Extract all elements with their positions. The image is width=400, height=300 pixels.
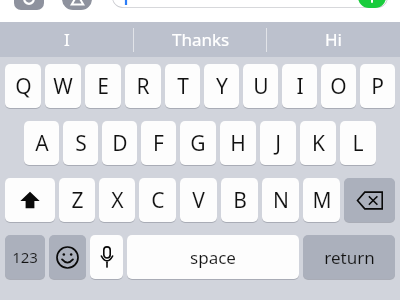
button[interactable]: Emoji xyxy=(49,235,86,280)
button[interactable]: M xyxy=(303,178,340,223)
button[interactable]: V xyxy=(180,178,217,223)
staticText: N xyxy=(273,186,289,215)
staticText: S xyxy=(75,129,87,158)
button[interactable]: C xyxy=(139,178,176,223)
button[interactable]: K xyxy=(300,121,336,166)
button[interactable]: Dictation xyxy=(90,235,123,280)
button[interactable]: R xyxy=(125,64,161,109)
button[interactable]: Send xyxy=(358,0,386,8)
button[interactable]: Shift xyxy=(5,178,55,223)
button[interactable]: I xyxy=(282,64,317,109)
button[interactable]: Camera xyxy=(14,0,44,10)
staticText: L xyxy=(352,129,364,158)
staticText: M xyxy=(312,186,332,215)
staticText: G xyxy=(190,129,206,158)
staticText: Q xyxy=(15,72,32,101)
staticText: A xyxy=(35,129,49,158)
staticText: space xyxy=(190,246,236,269)
button[interactable]: Z xyxy=(59,178,95,223)
staticText: I xyxy=(296,72,304,101)
staticText: X xyxy=(111,186,124,215)
button[interactable]: T xyxy=(165,64,200,109)
staticText: V xyxy=(192,186,205,215)
staticText: O xyxy=(330,72,347,101)
button[interactable]: P xyxy=(360,64,395,109)
staticText: Y xyxy=(216,72,228,101)
button[interactable]: L xyxy=(340,121,376,166)
staticText: D xyxy=(112,129,128,158)
button[interactable]: Thanks xyxy=(134,22,267,57)
staticText: Thanks xyxy=(172,28,230,51)
staticText: C xyxy=(151,186,165,215)
button[interactable]: W xyxy=(45,64,81,109)
button[interactable]: F xyxy=(141,121,176,166)
button[interactable]: I xyxy=(0,22,134,57)
button[interactable]: H xyxy=(220,121,256,166)
button[interactable]: O xyxy=(321,64,356,109)
button[interactable]: Send xyxy=(112,0,388,8)
button[interactable]: space xyxy=(127,235,299,280)
staticText: E xyxy=(97,72,109,101)
staticText: Z xyxy=(71,186,84,215)
staticText: Hi xyxy=(325,28,342,51)
button[interactable]: Q xyxy=(5,64,41,109)
button[interactable]: N xyxy=(262,178,299,223)
button[interactable]: A xyxy=(24,121,59,166)
button[interactable]: B xyxy=(221,178,258,223)
button[interactable]: J xyxy=(260,121,296,166)
staticText: T xyxy=(177,72,189,101)
button[interactable]: S xyxy=(63,121,98,166)
staticText: P xyxy=(371,72,384,101)
button[interactable]: U xyxy=(243,64,278,109)
button[interactable]: D xyxy=(102,121,137,166)
button[interactable]: X xyxy=(99,178,135,223)
staticText: return xyxy=(324,246,375,269)
button[interactable]: Backspace xyxy=(344,178,395,223)
staticText: J xyxy=(275,129,281,158)
staticText: R xyxy=(136,72,150,101)
staticText: K xyxy=(312,129,325,158)
button[interactable]: E xyxy=(85,64,121,109)
button[interactable]: G xyxy=(180,121,216,166)
staticText: F xyxy=(153,129,164,158)
staticText: B xyxy=(233,186,247,215)
button[interactable]: 123 xyxy=(5,235,45,280)
staticText: 123 xyxy=(12,247,38,267)
staticText: I xyxy=(64,28,70,51)
staticText: W xyxy=(53,72,73,101)
button[interactable]: App Store xyxy=(62,0,92,10)
staticText: H xyxy=(230,129,246,158)
staticText: U xyxy=(253,72,269,101)
button[interactable]: Hi xyxy=(267,22,400,57)
button[interactable]: Y xyxy=(204,64,239,109)
button[interactable]: return xyxy=(303,235,395,280)
